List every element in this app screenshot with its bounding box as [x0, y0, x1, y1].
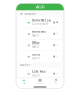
button[interactable]: HomeNet [18, 28, 62, 39]
staticText: HomeNet [32, 30, 46, 33]
staticText: Saved [32, 45, 39, 48]
button[interactable]: Guest [18, 51, 62, 62]
button[interactable]: Cafe Free [18, 68, 62, 79]
staticText: MY NETWORK [19, 12, 36, 16]
staticText: Open [32, 56, 40, 60]
staticText: Open [32, 74, 40, 77]
staticText: Devices [37, 83, 43, 84]
button[interactable]: Me [48, 78, 64, 84]
staticText: HomeNet_5G [32, 19, 51, 22]
button[interactable]: Devices [32, 78, 48, 84]
staticText: Wi-Fi [35, 4, 44, 10]
staticText: Wi-Fi [23, 83, 25, 84]
staticText: Guest [32, 53, 40, 56]
staticText: Connected [32, 22, 48, 26]
button[interactable]: HomeNet_5G [18, 17, 62, 28]
button[interactable]: Office [18, 39, 62, 50]
staticText: Office [32, 41, 40, 45]
staticText: NEARBY [19, 64, 30, 67]
staticText: Cafe Free [32, 70, 46, 73]
staticText: Saved [32, 34, 39, 37]
button[interactable]: Wi-Fi [16, 78, 32, 84]
